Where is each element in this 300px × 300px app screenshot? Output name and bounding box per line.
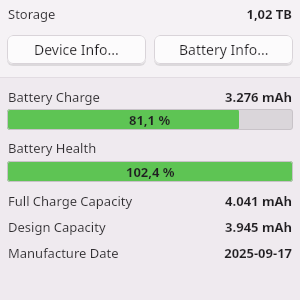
staticText: 81,1 % <box>129 111 171 129</box>
staticText: Full Charge Capacity <box>8 192 133 210</box>
staticText: Battery Health <box>8 139 97 157</box>
other: Device Info <box>7 35 146 65</box>
button[interactable]: Device Info... <box>7 35 146 64</box>
staticText: Battery Charge <box>8 88 100 106</box>
staticText: 4.041 mAh <box>225 192 292 210</box>
staticText: 3.276 mAh <box>225 88 292 106</box>
other: Battery Info <box>154 35 293 65</box>
staticText: Design Capacity <box>8 218 106 236</box>
staticText: Manufacture Date <box>8 244 119 262</box>
staticText: Battery Info... <box>179 40 269 59</box>
staticText: 102,4 % <box>126 163 175 181</box>
staticText: Device Info... <box>34 40 119 59</box>
staticText: 3.945 mAh <box>225 218 292 236</box>
staticText: Storage <box>8 5 56 23</box>
button[interactable]: Battery Info... <box>154 35 293 64</box>
staticText: 2025-09-17 <box>224 244 292 262</box>
staticText: 1,02 TB <box>246 5 292 23</box>
